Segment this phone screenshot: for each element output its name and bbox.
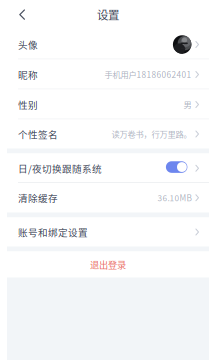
staticText: 手机用户18186062401: [104, 68, 191, 80]
button[interactable]: 清除缓存: [7, 183, 209, 212]
button[interactable]: 头像: [7, 29, 209, 59]
button[interactable]: 昵称: [7, 59, 209, 89]
staticText: 男: [183, 98, 191, 110]
button[interactable]: 个性签名: [7, 119, 209, 148]
button[interactable]: 日/夜切换跟随系统: [7, 153, 209, 183]
button[interactable]: 退出登录: [7, 251, 209, 277]
button[interactable]: Back: [7, 4, 35, 25]
staticText: 性别: [18, 97, 38, 111]
staticText: 清除缓存: [18, 191, 58, 205]
button[interactable]: 性别: [7, 89, 209, 119]
staticText: 日/夜切换跟随系统: [18, 161, 102, 175]
staticText: 个性签名: [18, 127, 58, 141]
staticText: 设置: [97, 6, 119, 23]
staticText: 账号和绑定设置: [18, 225, 88, 239]
staticText: 36.10MB: [157, 192, 191, 204]
staticText: 退出登录: [90, 258, 126, 271]
staticText: 读万卷书，行万里路。: [111, 128, 191, 140]
button[interactable]: 账号和绑定设置: [7, 217, 209, 246]
staticText: 头像: [18, 37, 38, 51]
staticText: 昵称: [18, 67, 38, 81]
